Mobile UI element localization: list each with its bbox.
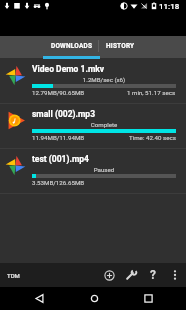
staticText: ? (150, 268, 156, 282)
button[interactable]: DOWNLOADS (43, 36, 100, 58)
button[interactable]: Help (143, 263, 163, 287)
staticText: HISTORY (106, 42, 135, 50)
button[interactable]: HISTORY (100, 36, 157, 58)
button[interactable]: More options (165, 263, 185, 287)
button[interactable]: Video Demo 1.mkv (0, 59, 186, 104)
button[interactable]: Tools (121, 263, 141, 287)
staticText: test (001).mp4 (32, 154, 89, 164)
staticText: Complete (32, 121, 176, 128)
button[interactable]: Add download (99, 263, 119, 287)
staticText: 1 min, 51.17 secs (127, 89, 176, 96)
staticText: 11:18 (159, 2, 180, 11)
staticText: 3.53MB/126.65MB (32, 179, 85, 186)
staticText: Video Demo 1.mkv (32, 64, 105, 74)
button[interactable]: test (001).mp4 (0, 149, 186, 194)
staticText: small (002).mp3 (32, 109, 96, 119)
staticText: Paused (32, 166, 176, 173)
button[interactable]: Home (83, 287, 105, 310)
button[interactable]: Back (28, 287, 50, 310)
staticText: 1.2MB/sec (x6) (32, 76, 176, 83)
staticText: TDM (7, 272, 20, 279)
button[interactable]: small (002).mp3 (0, 104, 186, 149)
staticText: 11.94MB/11.94MB (32, 134, 85, 141)
staticText: 12.79MB/90.65MB (32, 89, 85, 96)
staticText: DOWNLOADS (51, 42, 93, 50)
staticText: Time: 42.40 secs (129, 134, 176, 141)
button[interactable]: Recent apps (137, 287, 159, 310)
